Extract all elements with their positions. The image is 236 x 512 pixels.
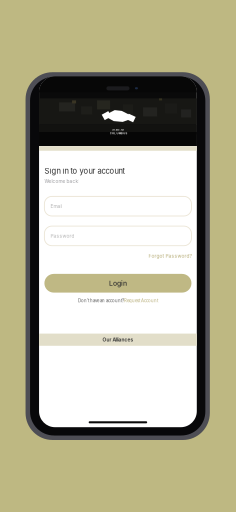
- staticText: Our Alliances: [102, 337, 133, 343]
- button[interactable]: Forgot Password?: [148, 253, 191, 259]
- staticText: Email: [50, 203, 62, 209]
- button[interactable]: Login: [44, 274, 191, 293]
- button[interactable]: Request Account: [124, 298, 158, 303]
- staticText: Login: [109, 279, 127, 287]
- staticText: Password: [50, 233, 74, 239]
- staticText: Request Account: [124, 298, 158, 303]
- staticText: COLUMBUS: [110, 132, 128, 135]
- staticText: The Best Ask: [112, 129, 124, 131]
- staticText: Forgot Password?: [148, 253, 191, 259]
- staticText: Sign in to your account: [44, 166, 124, 176]
- staticText: Welcome back!: [44, 179, 79, 184]
- staticText: Don't have an account?: [78, 298, 124, 303]
